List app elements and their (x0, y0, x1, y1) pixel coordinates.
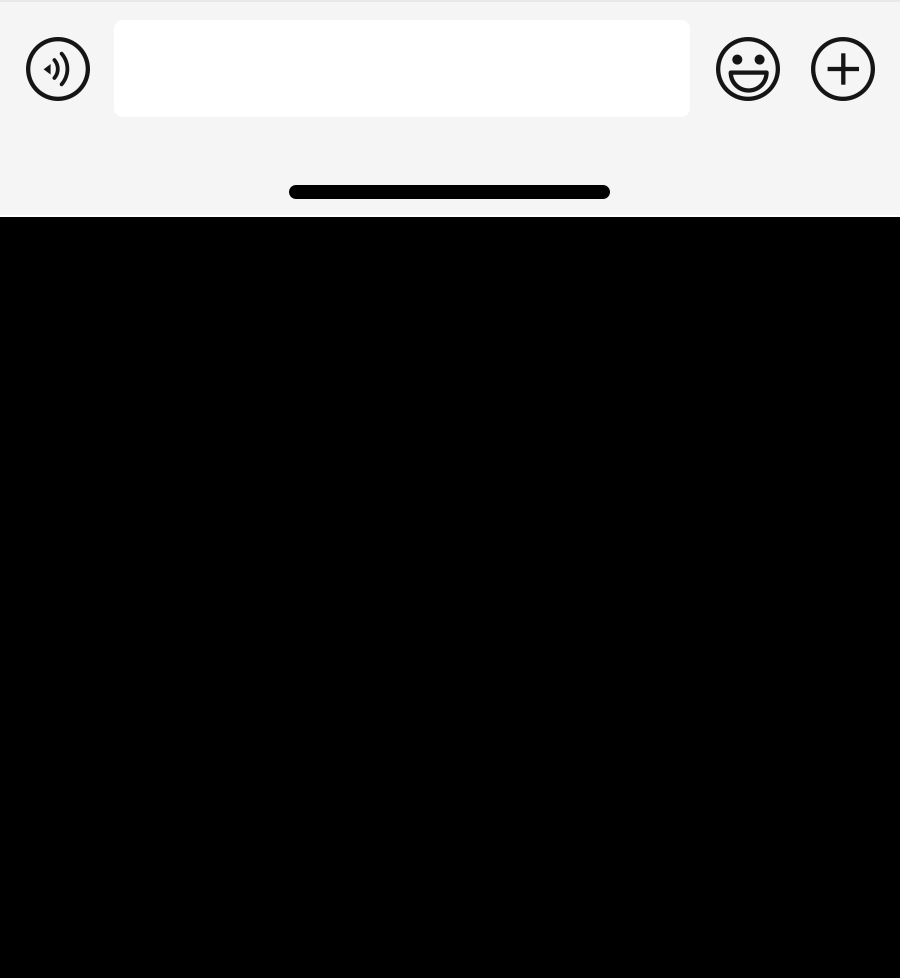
button[interactable]: Voice message (14, 25, 102, 113)
button[interactable]: Emoji (704, 25, 792, 113)
button[interactable]: More (799, 25, 887, 113)
